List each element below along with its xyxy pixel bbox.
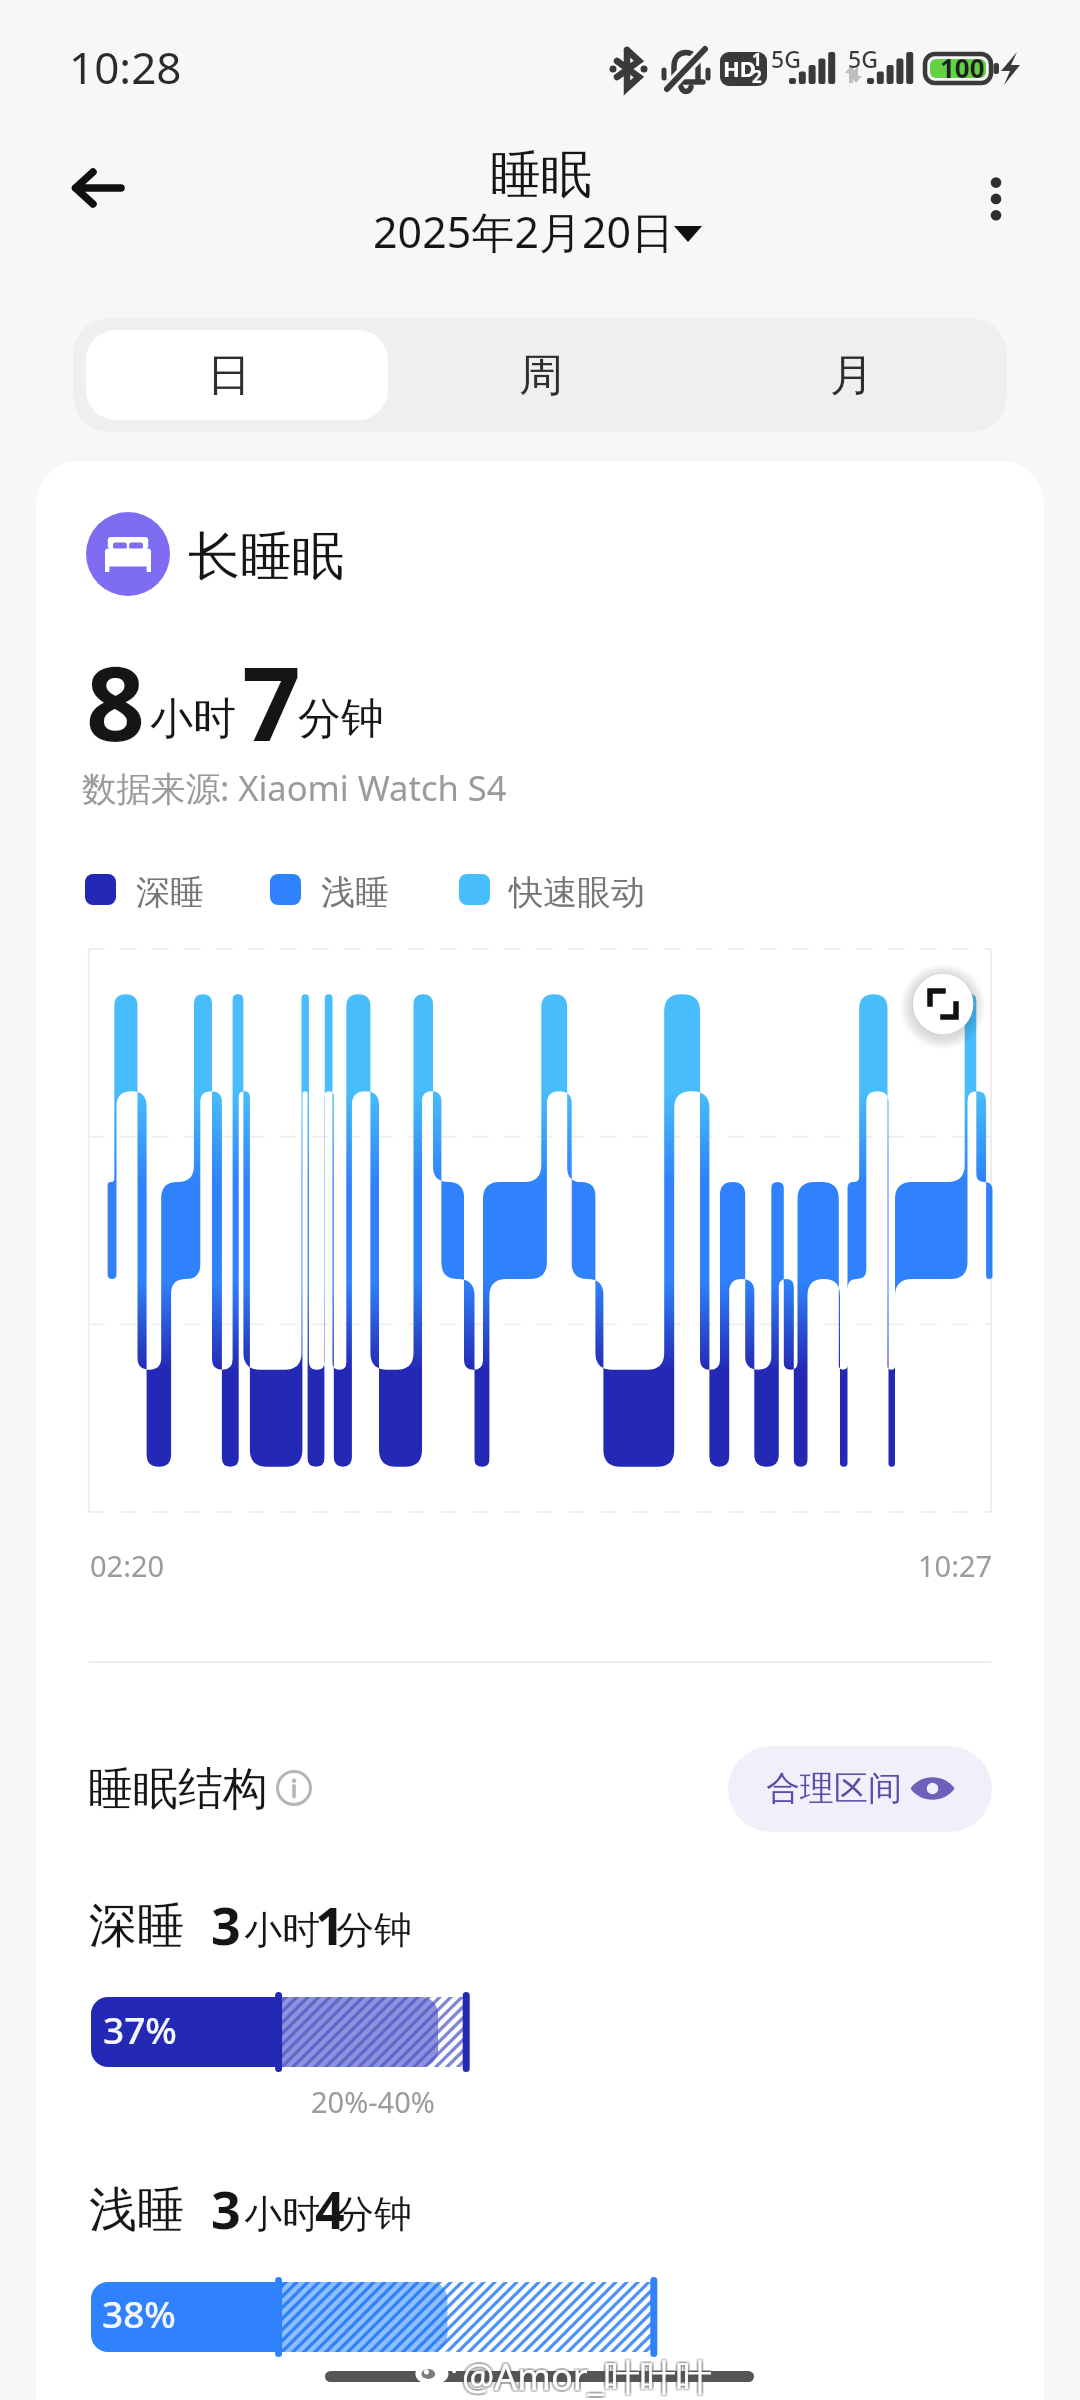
staticText: 小时: [244, 1906, 320, 1954]
staticText: 浅睡: [321, 871, 389, 914]
staticText: 1: [752, 48, 762, 71]
staticText: 37%: [103, 2004, 177, 2054]
staticText: 分钟: [298, 692, 384, 746]
staticText: 睡眠: [490, 143, 592, 207]
staticText: 小时: [244, 2190, 320, 2238]
staticText: 分钟: [336, 2190, 412, 2238]
button[interactable]: More options: [952, 150, 1038, 230]
staticText: @Amor_叶叶叶: [462, 2354, 712, 2400]
staticText: 日: [207, 348, 251, 403]
staticText: 3: [211, 1889, 241, 1960]
staticText: 02:20: [90, 1546, 165, 1585]
staticText: 3: [211, 2173, 241, 2244]
staticText: 深睡: [136, 871, 204, 914]
staticText: @Amor_叶叶叶: [460, 2350, 710, 2399]
button[interactable]: 月: [696, 318, 1007, 432]
staticText: 20%-40%: [311, 2082, 435, 2121]
staticText: 5G: [771, 43, 801, 74]
staticText: 7: [242, 631, 301, 771]
staticText: 长睡眠: [188, 524, 344, 590]
staticText: @Amor_叶叶叶: [464, 2352, 714, 2400]
staticText: HD: [723, 53, 756, 83]
staticText: 5G: [848, 43, 878, 74]
button[interactable]: Expand chart: [903, 964, 983, 1044]
staticText: 10:27: [918, 1546, 993, 1585]
staticText: 10:28: [69, 37, 182, 97]
button[interactable]: Back: [52, 150, 144, 226]
staticText: 周: [519, 348, 563, 403]
staticText: @Amor_叶叶叶: [462, 2350, 712, 2399]
staticText: 月: [830, 348, 874, 403]
staticText: @Amor_叶叶叶: [460, 2354, 710, 2400]
staticText: 合理区间: [766, 1767, 902, 1810]
button[interactable]: 日: [73, 318, 385, 432]
staticText: 2: [752, 65, 762, 88]
button[interactable]: [728, 1746, 992, 1832]
staticText: 深睡: [89, 1896, 185, 1956]
staticText: @Amor_叶叶叶: [460, 2352, 710, 2400]
staticText: 睡眠结构: [88, 1761, 268, 1818]
staticText: 浅睡: [89, 2180, 185, 2240]
staticText: 4: [315, 2173, 345, 2244]
staticText: 2025年2月20日: [373, 202, 675, 261]
staticText: 快速眼动: [509, 871, 645, 914]
button[interactable]: 周: [385, 318, 696, 432]
staticText: 数据来源: Xiaomi Watch S4: [82, 764, 507, 811]
staticText: 小时: [150, 692, 236, 746]
staticText: @Amor_叶叶叶: [462, 2352, 712, 2400]
staticText: @Amor_叶叶叶: [464, 2354, 714, 2400]
staticText: 分钟: [336, 1906, 412, 1954]
staticText: @Amor_叶叶叶: [464, 2350, 714, 2399]
staticText: 38%: [102, 2288, 176, 2338]
staticText: 8: [86, 631, 145, 771]
staticText: 1: [315, 1889, 345, 1960]
staticText: 100: [940, 50, 985, 85]
